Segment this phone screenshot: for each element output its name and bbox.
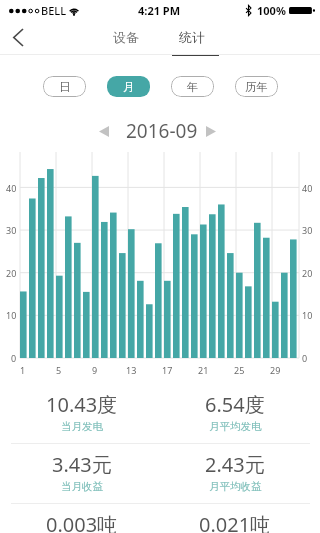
staticText: 统计 — [179, 29, 205, 45]
staticText: BELL — [41, 3, 67, 18]
staticText: 6.54度 — [205, 391, 265, 418]
button[interactable]: Next month — [200, 119, 222, 143]
staticText: 0 — [11, 352, 17, 364]
button[interactable]: 统计 — [166, 20, 218, 55]
staticText: 月平均收益 — [209, 480, 262, 493]
staticText: 29 — [270, 364, 281, 376]
button[interactable]: 设备 — [100, 20, 152, 55]
staticText: 年 — [187, 80, 199, 94]
staticText: 10 — [302, 309, 313, 321]
staticText: 9 — [92, 364, 98, 376]
staticText: 2016-09 — [126, 118, 198, 144]
button[interactable]: 年 — [171, 76, 214, 97]
staticText: 17 — [162, 364, 173, 376]
button[interactable]: 6.54度 — [155, 391, 315, 433]
staticText: 30 — [6, 224, 17, 236]
staticText: 日 — [59, 80, 71, 94]
staticText: 当月收益 — [61, 480, 103, 493]
button[interactable]: 0.021吨 — [155, 511, 315, 533]
staticText: 1 — [20, 364, 26, 376]
staticText: 40 — [6, 182, 17, 194]
staticText: 0 — [302, 352, 308, 364]
staticText: 13 — [126, 364, 137, 376]
button[interactable]: Previous month — [93, 119, 115, 143]
staticText: 当月发电 — [61, 420, 103, 433]
staticText: 20 — [6, 267, 17, 279]
staticText: 10 — [6, 309, 17, 321]
button[interactable]: 历年 — [235, 76, 278, 97]
staticText: 10.43度 — [46, 391, 118, 418]
staticText: 30 — [302, 224, 313, 236]
staticText: 月平均发电 — [209, 420, 262, 433]
staticText: 3.43元 — [52, 451, 112, 478]
staticText: 设备 — [113, 29, 139, 45]
staticText: 2.43元 — [205, 451, 265, 478]
staticText: 月 — [123, 80, 135, 94]
staticText: 40 — [302, 182, 313, 194]
staticText: 21 — [198, 364, 209, 376]
staticText: 4:21 PM — [138, 3, 181, 18]
staticText: 历年 — [245, 80, 268, 94]
button[interactable]: 0.003吨 — [2, 511, 162, 533]
button[interactable]: 日 — [43, 76, 86, 97]
staticText: 20 — [302, 267, 313, 279]
button[interactable]: 2.43元 — [155, 451, 315, 493]
staticText: 25 — [234, 364, 245, 376]
staticText: 5 — [56, 364, 62, 376]
staticText: 0.021吨 — [199, 511, 271, 533]
button[interactable]: Back — [0, 20, 36, 55]
button[interactable]: 月 — [107, 76, 150, 97]
button[interactable]: 10.43度 — [2, 391, 162, 433]
button[interactable]: 3.43元 — [2, 451, 162, 493]
staticText: 100% — [257, 3, 286, 18]
staticText: 0.003吨 — [46, 511, 118, 533]
